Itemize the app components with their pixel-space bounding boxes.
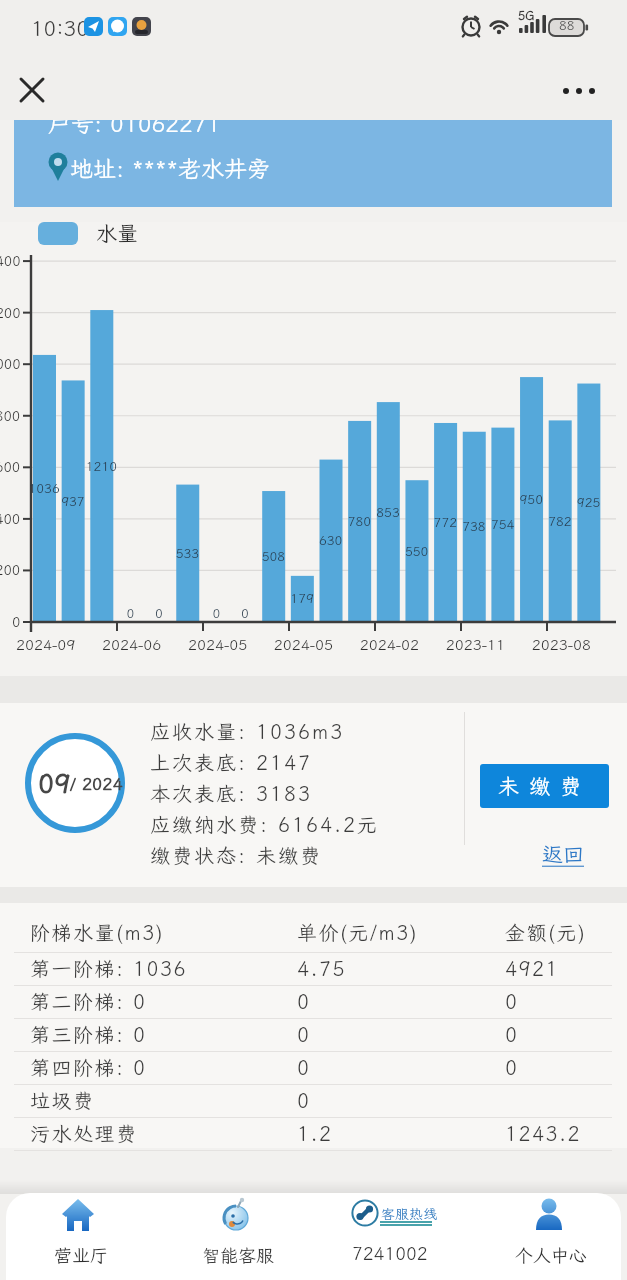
staticText: 第一阶梯: 1036 — [30, 955, 187, 981]
staticText: 第四阶梯: 0 — [30, 1054, 147, 1080]
button[interactable]: 返回 — [542, 840, 584, 868]
button[interactable] — [556, 70, 606, 110]
button[interactable] — [10, 68, 54, 112]
staticText: / 2024 — [70, 772, 123, 794]
staticText: 营业厅 — [54, 1243, 108, 1267]
staticText: 个人中心 — [515, 1243, 587, 1267]
button[interactable] — [178, 1194, 298, 1278]
staticText: 上次表底: 2147 — [150, 749, 312, 775]
staticText: 0 — [505, 988, 519, 1014]
staticText: 0 — [297, 1087, 311, 1113]
staticText: 7241002 — [352, 1241, 428, 1265]
button[interactable] — [20, 1194, 140, 1278]
staticText: 应缴纳水费: 6164.2元 — [150, 811, 379, 837]
staticText: 地址: ****老水井旁 — [70, 153, 271, 183]
staticText: 10:30 — [31, 14, 89, 42]
staticText: 户号: 01062271 — [48, 120, 221, 138]
staticText: 未缴费 — [498, 772, 591, 800]
staticText: 0 — [505, 1054, 519, 1080]
staticText: 第二阶梯: 0 — [30, 988, 147, 1014]
staticText: 0 — [297, 1021, 311, 1047]
staticText: 单价(元/m3) — [297, 919, 419, 945]
staticText: 0 — [297, 988, 311, 1014]
staticText: 垃圾费 — [30, 1087, 95, 1113]
staticText: 本次表底: 3183 — [150, 780, 312, 806]
button[interactable] — [490, 1194, 610, 1278]
button[interactable]: 未缴费 — [480, 764, 609, 808]
staticText: 0 — [297, 1054, 311, 1080]
staticText: 应收水量: 1036m3 — [150, 718, 345, 744]
staticText: 09 — [38, 765, 71, 801]
staticText: 水量 — [96, 219, 138, 247]
staticText: 智能客服 — [202, 1243, 274, 1267]
staticText: 金额(元) — [505, 919, 587, 945]
staticText: 5G — [518, 8, 535, 24]
staticText: 阶梯水量(m3) — [30, 919, 165, 945]
staticText: 1.2 — [297, 1120, 333, 1146]
staticText: 第三阶梯: 0 — [30, 1021, 147, 1047]
staticText: 污水处理费 — [30, 1120, 138, 1146]
staticText: 88 — [559, 17, 575, 34]
staticText: 客服热线 — [381, 1205, 437, 1223]
staticText: 4.75 — [297, 955, 346, 981]
staticText: 0 — [505, 1021, 519, 1047]
staticText: 缴费状态: 未缴费 — [150, 842, 322, 868]
staticText: 4921 — [505, 955, 559, 981]
button[interactable] — [334, 1194, 464, 1278]
staticText: 1243.2 — [505, 1120, 581, 1146]
